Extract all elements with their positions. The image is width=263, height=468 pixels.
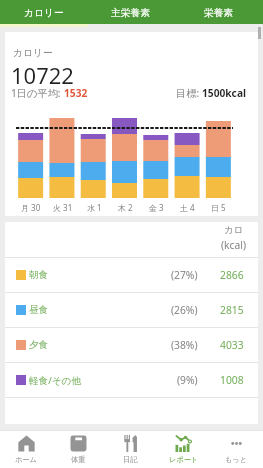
staticText: 2815 — [220, 303, 244, 317]
button[interactable]: 昼食 — [5, 293, 258, 327]
staticText: 栄養素 — [204, 7, 234, 19]
button[interactable]: もっと — [210, 430, 263, 468]
button[interactable]: 軽食/その他 — [5, 363, 258, 397]
staticText: 昼食 — [29, 304, 49, 316]
staticText: 1500kcal — [202, 86, 247, 100]
staticText: レポート — [169, 455, 199, 464]
staticText: (26%) — [171, 303, 198, 317]
button[interactable]: 栄養素 — [175, 0, 263, 24]
staticText: 1日の平均: — [11, 86, 64, 100]
staticText: 夕食 — [29, 339, 49, 351]
button[interactable]: カロリー — [0, 0, 87, 24]
button[interactable]: ホーム — [0, 430, 52, 468]
staticText: カロ — [224, 224, 244, 236]
staticText: 土 4 — [180, 202, 195, 213]
staticText: カロリー — [13, 47, 53, 59]
button[interactable]: 体重 — [52, 430, 104, 468]
staticText: 主栄養素 — [111, 7, 151, 19]
staticText: 10722 — [11, 60, 74, 90]
staticText: (9%) — [177, 373, 198, 387]
staticText: 朝食 — [29, 269, 49, 281]
staticText: 日 5 — [211, 202, 226, 213]
staticText: 1008 — [220, 373, 244, 387]
staticText: ホーム — [15, 455, 37, 464]
staticText: (27%) — [171, 268, 198, 282]
staticText: 金 3 — [149, 202, 164, 213]
button[interactable]: 朝食 — [5, 258, 258, 292]
staticText: 木 2 — [118, 202, 133, 213]
staticText: (kcal) — [221, 238, 247, 252]
staticText: 軽食/その他 — [29, 374, 81, 387]
staticText: 目標: — [176, 86, 202, 100]
staticText: (38%) — [171, 338, 198, 352]
staticText: 水 1 — [87, 202, 102, 213]
staticText: 日記 — [123, 455, 138, 464]
button[interactable]: レポート — [157, 430, 210, 468]
staticText: カロリー — [24, 7, 64, 19]
staticText: 火 31 — [53, 202, 73, 213]
staticText: 月 30 — [21, 202, 41, 213]
staticText: 1532 — [64, 86, 88, 100]
button[interactable]: 日記 — [104, 430, 157, 468]
staticText: もっと — [225, 455, 248, 464]
button[interactable]: 主栄養素 — [87, 0, 175, 24]
staticText: 2866 — [220, 268, 244, 282]
button[interactable]: 夕食 — [5, 328, 258, 362]
staticText: 体重 — [71, 455, 86, 464]
staticText: 4033 — [220, 338, 244, 352]
